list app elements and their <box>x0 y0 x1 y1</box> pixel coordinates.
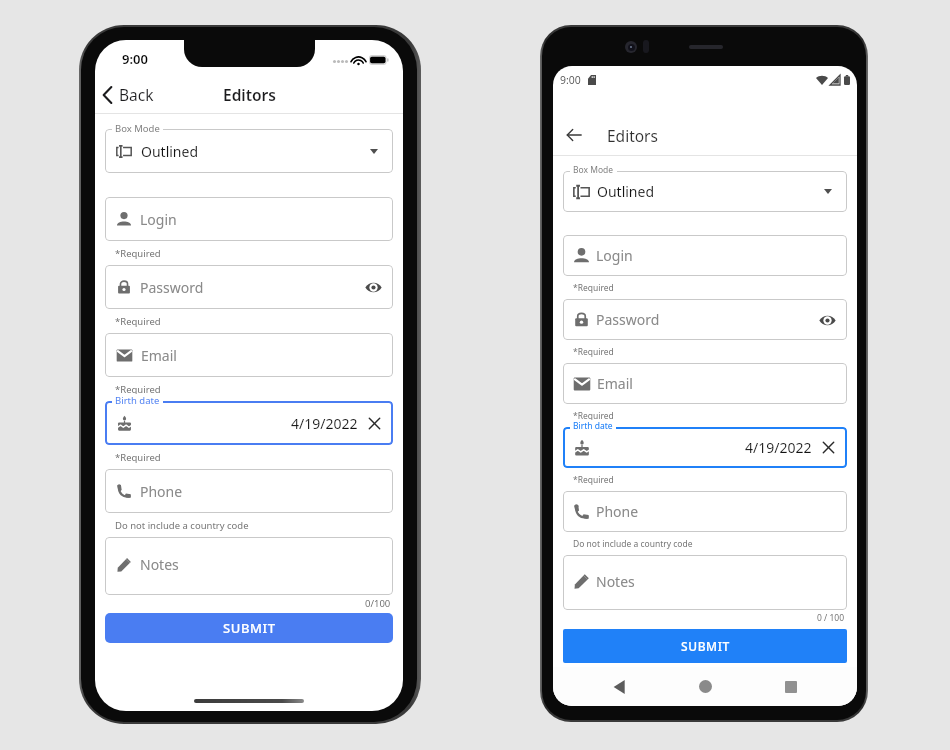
button[interactable]: Recents <box>771 667 811 706</box>
staticText: SUBMIT <box>223 619 276 637</box>
staticText: Login <box>596 246 633 265</box>
button[interactable]: SUBMIT <box>105 613 393 643</box>
button[interactable]: Password <box>105 265 393 309</box>
button[interactable]: Email <box>563 363 847 404</box>
staticText: 4/19/2022 <box>745 438 812 457</box>
button[interactable]: SUBMIT <box>563 629 847 663</box>
staticText: *Required <box>573 282 614 294</box>
staticText: *Required <box>573 474 614 486</box>
staticText: Notes <box>140 555 179 574</box>
button[interactable]: Toggle password visibility <box>817 310 837 330</box>
staticText: Editors <box>223 84 276 105</box>
staticText: 9:00 <box>560 73 581 87</box>
button[interactable]: Clear date <box>366 415 383 432</box>
staticText: Phone <box>140 482 183 501</box>
staticText: *Required <box>115 247 161 260</box>
button[interactable]: Back <box>599 667 639 706</box>
staticText: Email <box>597 374 633 393</box>
staticText: Outlined <box>141 142 199 161</box>
staticText: *Required <box>573 410 614 422</box>
button[interactable]: Login <box>105 197 393 241</box>
button[interactable]: Phone <box>563 491 847 532</box>
staticText: Login <box>140 210 177 229</box>
button[interactable]: 4/19/2022 <box>105 401 393 445</box>
button[interactable]: 4/19/2022 <box>563 427 847 468</box>
staticText: Do not include a country code <box>573 538 693 550</box>
staticText: Back <box>119 84 154 105</box>
button[interactable]: Back <box>102 84 154 105</box>
button[interactable]: Phone <box>105 469 393 513</box>
button[interactable]: Outlined <box>105 129 393 173</box>
staticText: *Required <box>115 315 161 328</box>
staticText: 4/19/2022 <box>291 414 358 433</box>
staticText: Birth date <box>115 394 160 407</box>
staticText: Box Mode <box>573 164 614 176</box>
button[interactable]: Notes <box>563 555 847 610</box>
staticText: Outlined <box>597 182 655 201</box>
staticText: Editors <box>607 125 658 146</box>
button[interactable]: Email <box>105 333 393 377</box>
staticText: 9:00 <box>122 50 148 68</box>
button[interactable]: Toggle password visibility <box>363 277 383 297</box>
button[interactable]: Outlined <box>563 171 847 212</box>
button[interactable]: Back <box>558 119 590 151</box>
button[interactable]: Password <box>563 299 847 340</box>
button[interactable]: Notes <box>105 537 393 595</box>
staticText: Email <box>141 346 177 365</box>
staticText: SUBMIT <box>681 638 730 654</box>
button[interactable]: Login <box>563 235 847 276</box>
staticText: 0/100 <box>365 597 391 610</box>
button[interactable]: Clear date <box>820 439 837 456</box>
staticText: *Required <box>573 346 614 358</box>
staticText: *Required <box>115 383 161 396</box>
staticText: Password <box>596 310 660 329</box>
staticText: Box Mode <box>115 122 160 135</box>
staticText: Birth date <box>573 420 613 432</box>
staticText: *Required <box>115 451 161 464</box>
button[interactable]: Home <box>685 667 725 706</box>
staticText: 0 / 100 <box>817 612 845 624</box>
staticText: Password <box>140 278 204 297</box>
staticText: Notes <box>596 572 635 591</box>
staticText: Phone <box>596 502 639 521</box>
staticText: Do not include a country code <box>115 519 249 532</box>
